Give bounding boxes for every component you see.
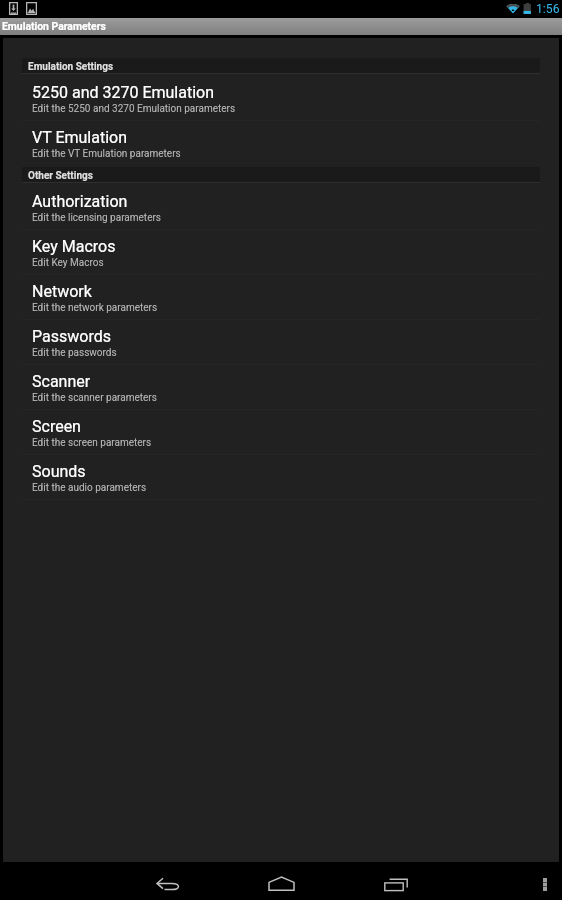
staticText: Edit the audio parameters [32,482,147,494]
staticText: Edit the scanner parameters [32,392,157,404]
staticText: Screen [32,417,81,436]
button[interactable]: Authorization [3,183,559,228]
staticText: Network [32,282,92,301]
button[interactable]: Key Macros [3,228,559,273]
button[interactable]: Passwords [3,318,559,363]
button[interactable]: VT Emulation [3,119,559,164]
staticText: Authorization [32,192,128,211]
staticText: Edit the passwords [32,347,117,359]
staticText: Other Settings [28,170,93,182]
staticText: VT Emulation [32,128,128,147]
staticText: Edit the VT Emulation parameters [32,148,181,160]
button[interactable]: Screen [3,408,559,453]
staticText: Key Macros [32,237,116,256]
staticText: 5250 and 3270 Emulation [32,83,215,102]
staticText: Scanner [32,372,91,391]
button[interactable]: Scanner [3,363,559,408]
button[interactable]: 5250 and 3270 Emulation [3,74,559,119]
staticText: Sounds [32,462,86,481]
button[interactable]: Home [259,862,303,900]
button[interactable]: Network [3,273,559,318]
staticText: Edit Key Macros [32,257,104,269]
staticText: Emulation Settings [28,61,114,73]
staticText: Edit the screen parameters [32,437,152,449]
button[interactable]: More options [528,862,562,900]
button[interactable]: Sounds [3,453,559,498]
staticText: Emulation Parameters [2,20,106,32]
staticText: Edit the 5250 and 3270 Emulation paramet… [32,103,236,115]
staticText: Edit the licensing parameters [32,212,161,224]
staticText: 1:56 [536,2,560,16]
button[interactable]: Back [145,862,189,900]
staticText: Edit the network parameters [32,302,158,314]
button[interactable]: Recent apps [375,862,419,900]
staticText: Passwords [32,327,111,346]
